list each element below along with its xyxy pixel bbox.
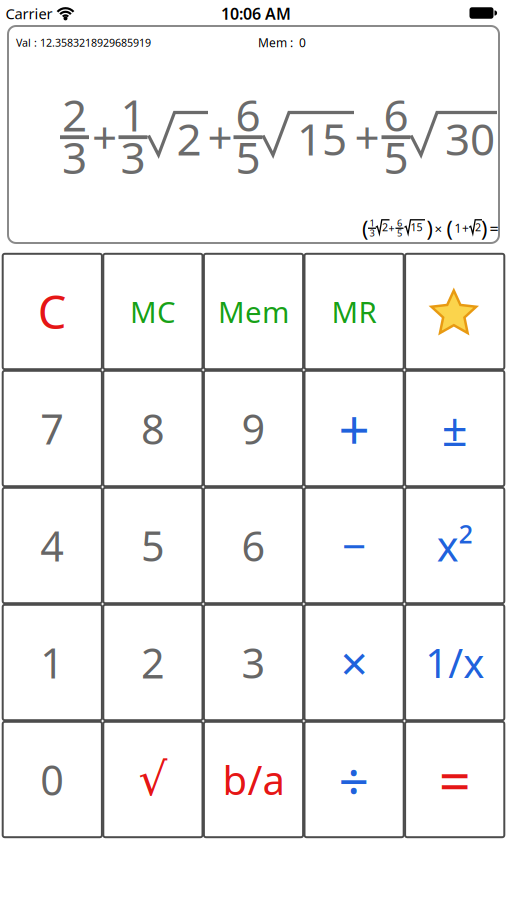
staticText: + bbox=[388, 221, 394, 235]
button[interactable]: 5 bbox=[103, 488, 202, 603]
staticText: Mem bbox=[218, 292, 289, 331]
button[interactable]: C bbox=[3, 254, 102, 369]
staticText: 1 bbox=[120, 85, 145, 144]
staticText: 6 bbox=[241, 518, 265, 573]
button[interactable]: 8 bbox=[103, 371, 202, 486]
staticText: 3 bbox=[369, 227, 374, 239]
staticText: Mem : 0 bbox=[258, 34, 306, 50]
staticText: √ bbox=[138, 754, 167, 805]
staticText: + bbox=[92, 107, 117, 166]
staticText: 2 bbox=[382, 220, 388, 234]
button[interactable]: b/a bbox=[204, 722, 303, 837]
staticText: 1 bbox=[369, 217, 374, 229]
staticText: 5 bbox=[235, 128, 260, 186]
staticText: − bbox=[342, 517, 366, 574]
staticText: = bbox=[489, 218, 498, 239]
staticText: 30 bbox=[445, 109, 495, 168]
button[interactable]: ± bbox=[405, 371, 504, 486]
staticText: × bbox=[341, 631, 368, 694]
staticText: ( bbox=[446, 214, 452, 243]
button[interactable]: ÷ bbox=[304, 722, 404, 837]
staticText: 8 bbox=[141, 401, 165, 456]
staticText: Carrier bbox=[5, 4, 52, 23]
staticText: x² bbox=[437, 518, 473, 573]
staticText: + bbox=[462, 220, 469, 236]
staticText: 5 bbox=[383, 128, 408, 186]
staticText: 4 bbox=[40, 518, 64, 573]
staticText: 2 bbox=[62, 85, 87, 144]
button[interactable] bbox=[405, 254, 504, 369]
button[interactable]: − bbox=[304, 488, 404, 603]
button[interactable]: x² bbox=[405, 488, 504, 603]
button[interactable]: 1 bbox=[3, 605, 102, 720]
staticText: ( bbox=[362, 214, 368, 243]
staticText: 6 bbox=[397, 217, 402, 229]
button[interactable]: MR bbox=[304, 254, 404, 369]
button[interactable]: 7 bbox=[3, 371, 102, 486]
staticText: + bbox=[207, 107, 232, 166]
staticText: 1 bbox=[454, 220, 461, 236]
staticText: + bbox=[339, 392, 370, 465]
staticText: 15 bbox=[297, 109, 347, 168]
button[interactable]: × bbox=[304, 605, 404, 720]
staticText: 3 bbox=[62, 128, 87, 186]
button[interactable]: = bbox=[405, 722, 504, 837]
staticText: 5 bbox=[141, 518, 165, 573]
button[interactable]: 1/x bbox=[405, 605, 504, 720]
staticText: ÷ bbox=[339, 744, 370, 815]
staticText: 7 bbox=[40, 401, 64, 456]
staticText: 2 bbox=[176, 109, 201, 168]
staticText: 1 bbox=[40, 635, 64, 690]
staticText: 10:06 AM bbox=[221, 3, 291, 24]
button[interactable]: √ bbox=[103, 722, 202, 837]
staticText: 15 bbox=[410, 220, 422, 234]
staticText: 0 bbox=[40, 752, 64, 807]
staticText: ± bbox=[442, 398, 468, 459]
button[interactable]: 0 bbox=[3, 722, 102, 837]
staticText: = bbox=[439, 742, 471, 817]
button[interactable]: Mem bbox=[204, 254, 303, 369]
staticText: 2 bbox=[141, 635, 165, 690]
staticText: × bbox=[434, 220, 442, 237]
staticText: 6 bbox=[383, 85, 408, 144]
staticText: MC bbox=[130, 292, 176, 331]
staticText: 9 bbox=[241, 401, 265, 456]
staticText: 2 bbox=[475, 220, 481, 234]
staticText: 3 bbox=[241, 635, 265, 690]
button[interactable]: 4 bbox=[3, 488, 102, 603]
button[interactable]: MC bbox=[103, 254, 202, 369]
button[interactable]: 3 bbox=[204, 605, 303, 720]
staticText: 6 bbox=[235, 85, 260, 144]
staticText: 3 bbox=[120, 128, 145, 186]
staticText: b/a bbox=[222, 753, 284, 806]
staticText: 1/x bbox=[425, 636, 484, 689]
staticText: MR bbox=[332, 292, 377, 331]
staticText: Val : 12.3583218929685919 bbox=[16, 35, 151, 50]
staticText: 5 bbox=[397, 227, 402, 239]
staticText: C bbox=[38, 281, 67, 342]
button[interactable]: 9 bbox=[204, 371, 303, 486]
staticText: + bbox=[354, 107, 379, 166]
staticText: ) bbox=[426, 214, 432, 243]
button[interactable]: 6 bbox=[204, 488, 303, 603]
button[interactable]: + bbox=[304, 371, 404, 486]
staticText: ) bbox=[481, 214, 487, 243]
button[interactable]: 2 bbox=[103, 605, 202, 720]
